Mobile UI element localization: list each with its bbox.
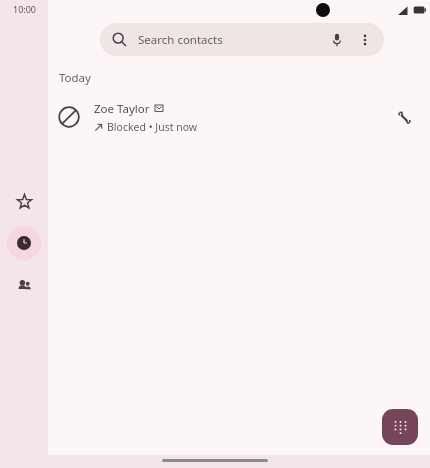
button[interactable]: Recents [7, 226, 41, 260]
staticText: Today [59, 70, 91, 86]
button[interactable]: Voice search [324, 27, 350, 53]
button[interactable]: Zoe Taylor [48, 97, 430, 137]
staticText: Zoe Taylor [94, 101, 150, 117]
button[interactable]: Call [386, 99, 422, 135]
button[interactable]: Dialpad [382, 409, 418, 445]
button[interactable]: More options [352, 27, 378, 53]
button[interactable]: Favorites [8, 186, 40, 216]
staticText: Search contacts [138, 32, 223, 48]
staticText: 10:00 [13, 3, 37, 15]
button[interactable]: Search contacts [100, 23, 384, 56]
staticText: Blocked • Just now [107, 120, 198, 134]
button[interactable]: Contacts [8, 271, 40, 301]
